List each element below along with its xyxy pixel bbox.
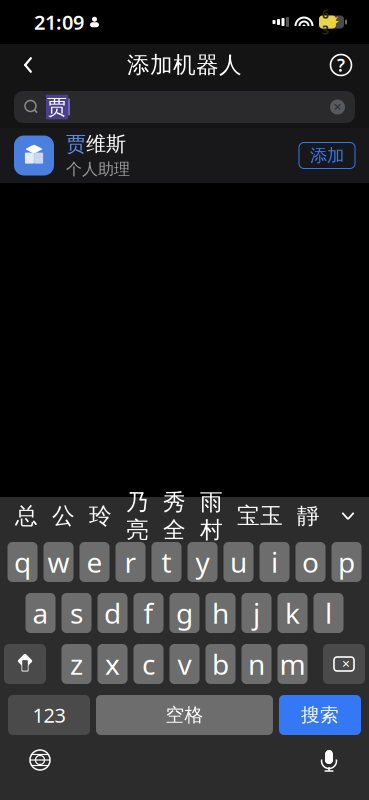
staticText: h: [212, 594, 229, 632]
button[interactable]: 玲: [82, 498, 119, 534]
staticText: j: [253, 594, 260, 632]
button[interactable]: d: [97, 593, 127, 633]
button[interactable]: 雨村: [193, 498, 230, 534]
staticText: o: [302, 543, 319, 581]
staticText: x: [105, 645, 120, 683]
staticText: 维斯: [86, 132, 126, 156]
staticText: 秀全: [163, 488, 186, 544]
staticText: q: [14, 543, 31, 581]
button[interactable]: m: [277, 644, 307, 684]
button[interactable]: a: [25, 593, 55, 633]
staticText: t: [161, 543, 171, 581]
button[interactable]: Back: [4, 44, 52, 86]
button[interactable]: i: [259, 542, 289, 582]
button[interactable]: f: [133, 593, 163, 633]
button[interactable]: y: [187, 542, 217, 582]
staticText: 63: [322, 6, 329, 38]
staticText: ⚡: [329, 17, 341, 27]
button[interactable]: Help: [317, 44, 365, 86]
staticText: 添加: [310, 145, 344, 166]
staticText: i: [271, 543, 278, 581]
staticText: 总: [15, 502, 38, 530]
button[interactable]: n: [241, 644, 271, 684]
button[interactable]: j: [241, 593, 271, 633]
button[interactable]: k: [277, 593, 307, 633]
button[interactable]: 宝玉: [230, 498, 290, 534]
button[interactable]: 秀全: [156, 498, 193, 534]
button[interactable]: s: [61, 593, 91, 633]
staticText: r: [124, 543, 136, 581]
staticText: e: [86, 543, 102, 581]
staticText: 贾: [47, 95, 67, 119]
button[interactable]: t: [151, 542, 181, 582]
button[interactable]: v: [169, 644, 199, 684]
staticText: 搜索: [301, 703, 339, 726]
staticText: d: [104, 594, 121, 632]
button[interactable]: 贾: [14, 91, 355, 123]
button[interactable]: g: [169, 593, 199, 633]
staticText: s: [70, 594, 83, 632]
button[interactable]: o: [295, 542, 325, 582]
button[interactable]: h: [205, 593, 235, 633]
button[interactable]: q: [7, 542, 37, 582]
staticText: 123: [32, 702, 65, 728]
button[interactable]: Delete: [323, 644, 365, 684]
staticText: 空格: [165, 703, 203, 726]
staticText: y: [195, 543, 209, 581]
button[interactable]: e: [79, 542, 109, 582]
button[interactable]: 总: [8, 498, 45, 534]
staticText: b: [212, 645, 229, 683]
button[interactable]: r: [115, 542, 145, 582]
staticText: n: [248, 645, 265, 683]
staticText: 玲: [89, 502, 112, 530]
staticText: 靜: [297, 502, 320, 530]
button[interactable]: w: [43, 542, 73, 582]
staticText: m: [279, 645, 305, 683]
button[interactable]: x: [97, 644, 127, 684]
staticText: g: [176, 594, 193, 632]
staticText: k: [285, 594, 300, 632]
button[interactable]: c: [133, 644, 163, 684]
button[interactable]: 公: [45, 498, 82, 534]
button[interactable]: p: [331, 542, 361, 582]
button[interactable]: 123: [8, 695, 90, 735]
staticText: w: [47, 543, 69, 581]
button[interactable]: Dictation: [301, 735, 357, 785]
button[interactable]: 空格: [96, 695, 273, 735]
staticText: ?: [337, 53, 345, 76]
staticText: 21:09: [34, 9, 84, 35]
staticText: 贾: [66, 132, 86, 156]
button[interactable]: Switch keyboard: [12, 735, 68, 785]
button[interactable]: 靜: [290, 498, 327, 534]
button[interactable]: More candidates: [335, 498, 361, 534]
button[interactable]: 搜索: [279, 695, 361, 735]
staticText: z: [70, 645, 83, 683]
staticText: 乃亮: [126, 488, 149, 544]
staticText: ✕: [333, 101, 342, 113]
staticText: ✕: [341, 658, 350, 670]
staticText: 添加机器人: [127, 51, 242, 79]
button[interactable]: Shift: [4, 644, 46, 684]
staticText: f: [143, 594, 153, 632]
button[interactable]: u: [223, 542, 253, 582]
button[interactable]: b: [205, 644, 235, 684]
staticText: 公: [52, 502, 75, 530]
staticText: v: [177, 645, 191, 683]
staticText: u: [230, 543, 247, 581]
staticText: a: [32, 594, 48, 632]
staticText: p: [338, 543, 355, 581]
staticText: 个人助理: [66, 159, 130, 179]
button[interactable]: 贾: [0, 128, 369, 183]
staticText: 雨村: [200, 488, 223, 544]
staticText: c: [142, 645, 155, 683]
button[interactable]: l: [313, 593, 343, 633]
button[interactable]: z: [61, 644, 91, 684]
staticText: 宝玉: [237, 502, 283, 530]
button[interactable]: 乃亮: [119, 498, 156, 534]
staticText: l: [325, 594, 332, 632]
